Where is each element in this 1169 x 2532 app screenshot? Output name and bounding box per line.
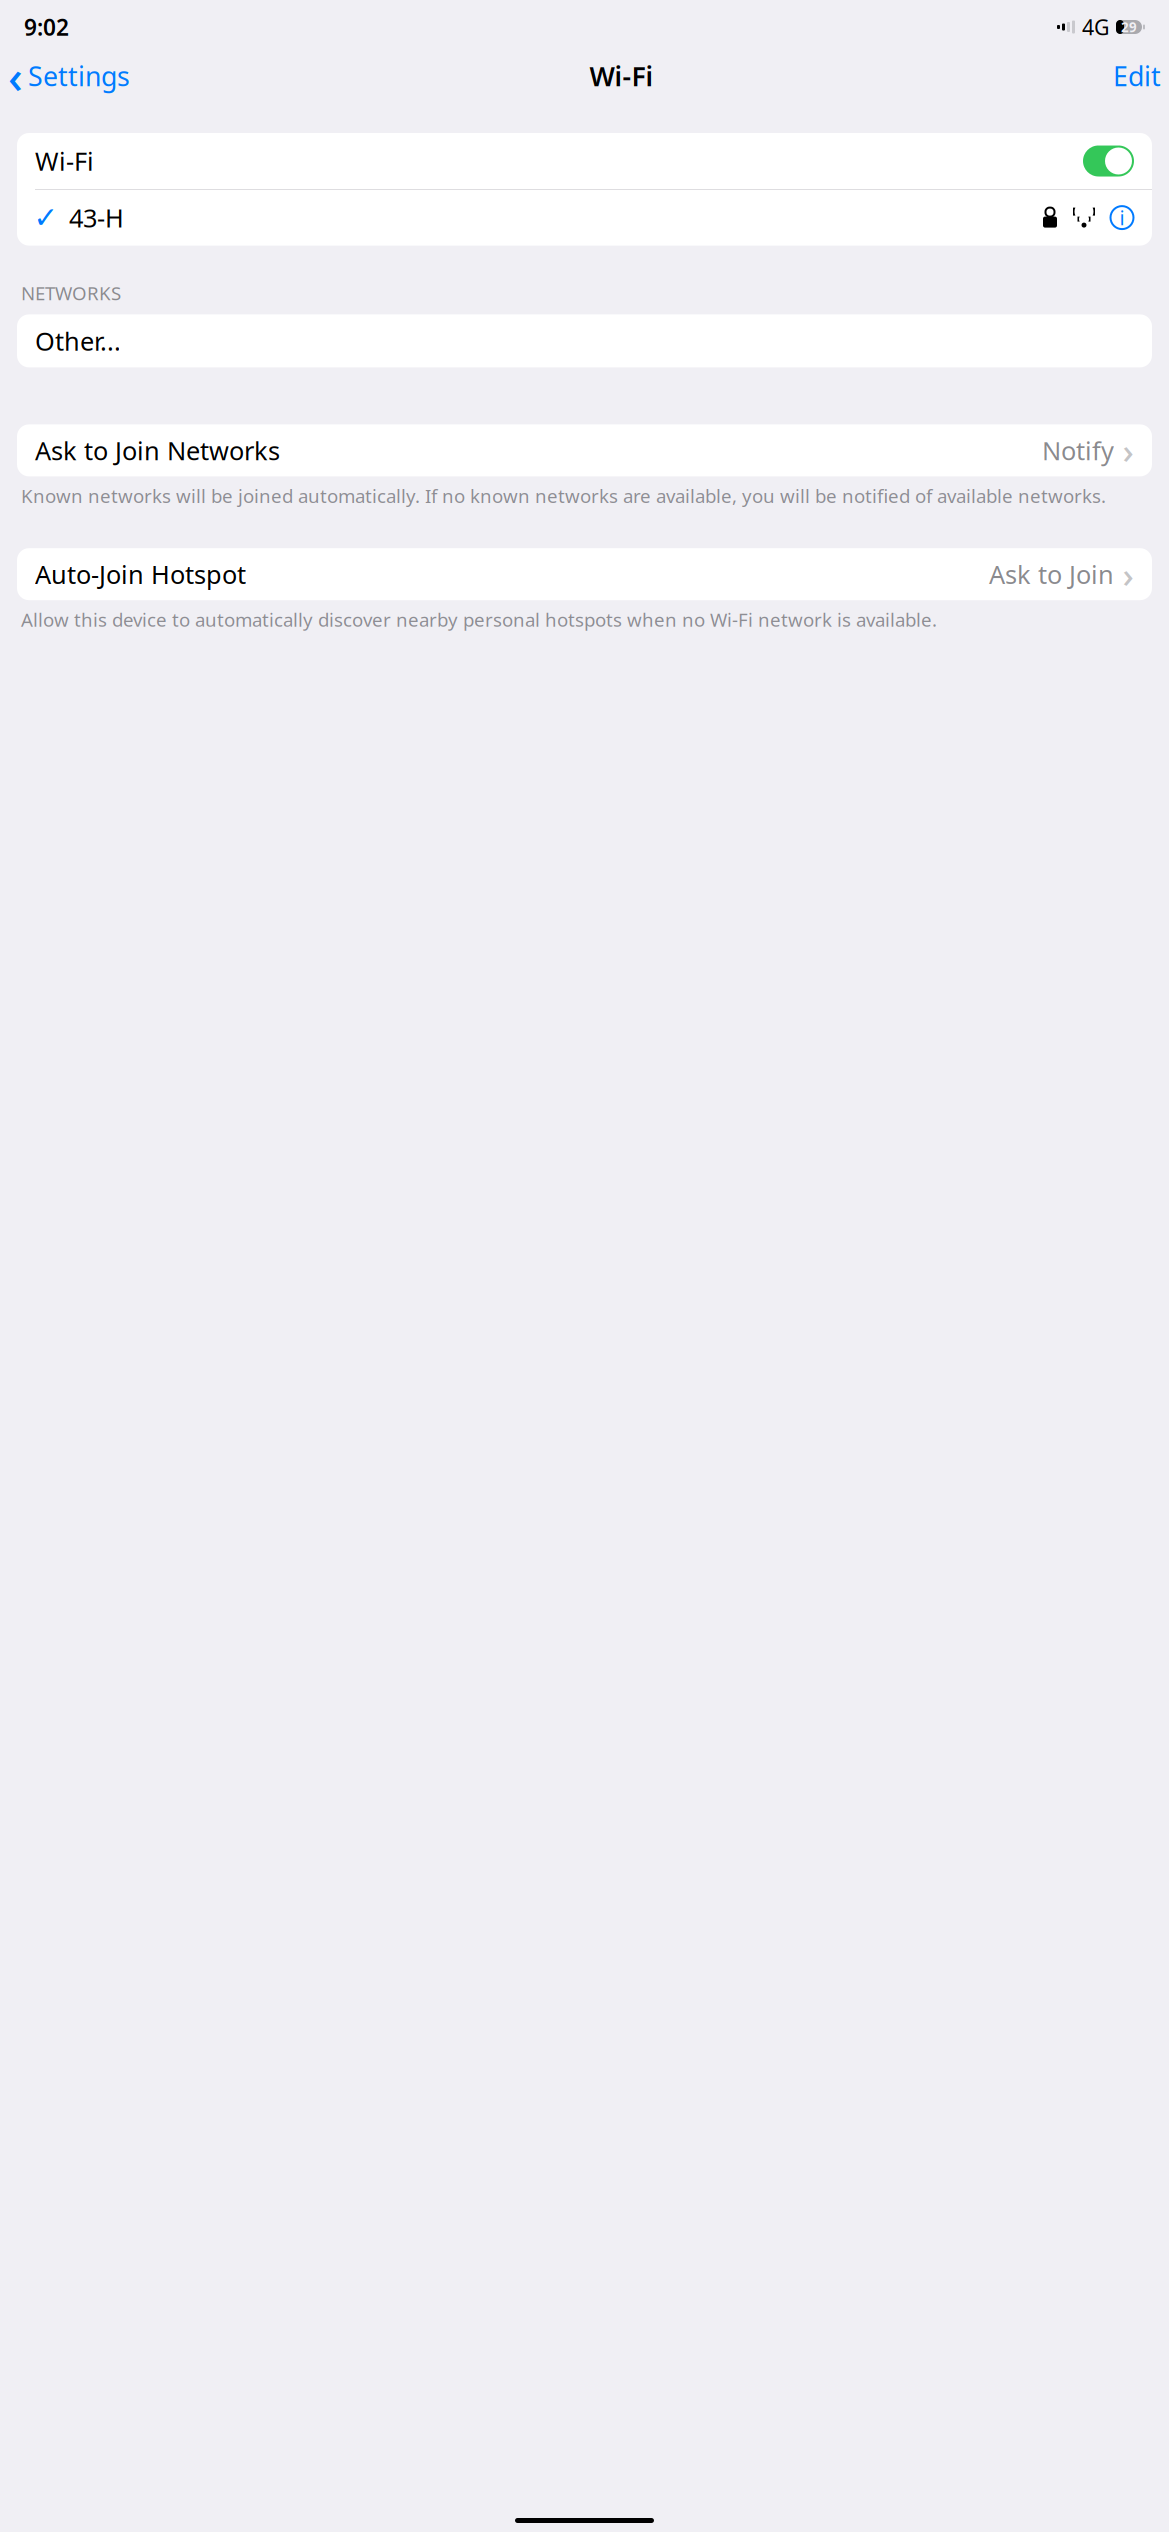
- staticText: 29: [1121, 18, 1137, 36]
- button[interactable]: Wi-Fi: [17, 133, 1152, 189]
- staticText: ›: [1122, 427, 1133, 473]
- staticText: Notify: [1042, 434, 1114, 467]
- staticText: 4G: [1082, 13, 1110, 41]
- staticText: ✓: [33, 201, 58, 234]
- staticText: NETWORKS: [21, 281, 121, 305]
- staticText: Edit: [1113, 58, 1161, 94]
- staticText: Wi-Fi: [35, 144, 94, 178]
- button[interactable]: Edit: [1113, 54, 1161, 98]
- staticText: ‹: [8, 46, 23, 106]
- button[interactable]: Other...: [17, 314, 1152, 367]
- staticText: Settings: [28, 58, 130, 94]
- button[interactable]: ✓: [17, 190, 1152, 246]
- button[interactable]: Ask to Join Networks: [17, 424, 1152, 476]
- staticText: Wi-Fi: [589, 58, 653, 94]
- staticText: Ask to Join Networks: [35, 434, 280, 467]
- staticText: 9:02: [24, 12, 69, 42]
- staticText: i: [1119, 204, 1124, 231]
- staticText: Other...: [35, 324, 121, 358]
- button[interactable]: ‹: [8, 42, 130, 110]
- staticText: Ask to Join: [989, 557, 1114, 591]
- staticText: Known networks will be joined automatica…: [21, 483, 1106, 508]
- staticText: Allow this device to automatically disco…: [21, 607, 937, 632]
- staticText: ›: [1122, 551, 1133, 597]
- staticText: Auto-Join Hotspot: [35, 557, 246, 591]
- button[interactable]: Auto-Join Hotspot: [17, 548, 1152, 600]
- staticText: 43-H: [69, 201, 124, 234]
